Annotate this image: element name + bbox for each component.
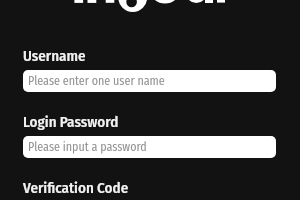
staticText: Username (23, 47, 86, 65)
button[interactable]: Please input a password (23, 136, 276, 158)
staticText: Verification Code (23, 179, 129, 197)
staticText: Please enter one user name (28, 74, 165, 88)
staticText: Please input a password (28, 140, 147, 154)
button[interactable]: Please enter one user name (23, 70, 276, 92)
staticText: Login Password (23, 113, 119, 131)
